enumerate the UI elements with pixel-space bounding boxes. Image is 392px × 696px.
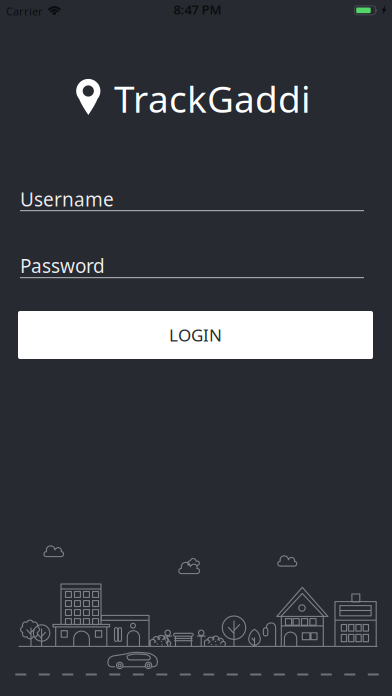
button[interactable]: LOGIN: [18, 311, 373, 359]
staticText: TrackGaddi: [114, 74, 311, 123]
staticText: 8:47 PM: [173, 1, 221, 18]
staticText: Username: [20, 186, 114, 212]
staticText: LOGIN: [169, 324, 222, 346]
button[interactable]: Password: [20, 253, 364, 278]
staticText: Password: [20, 253, 105, 278]
button[interactable]: Username: [20, 186, 364, 211]
staticText: Carrier: [6, 4, 43, 19]
